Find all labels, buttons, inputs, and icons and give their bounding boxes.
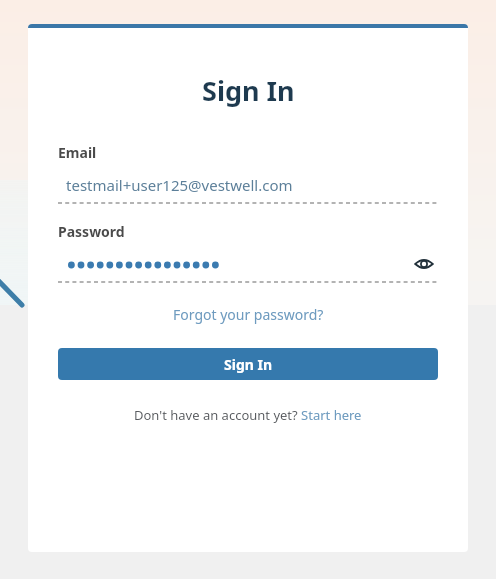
staticText: Don't have an account yet? Start here — [134, 406, 362, 424]
button[interactable]: Don't have an account yet? Start here — [134, 406, 362, 424]
button[interactable]: Show password — [410, 253, 438, 275]
button[interactable]: Forgot your password? — [173, 305, 324, 324]
staticText: Password — [58, 222, 125, 241]
staticText: Sign In — [224, 355, 273, 374]
staticText: Forgot your password? — [173, 305, 324, 324]
button[interactable]: Show password — [58, 253, 438, 275]
staticText: Sign In — [202, 72, 295, 109]
button[interactable]: testmail+user125@vestwell.com — [58, 174, 438, 204]
staticText: Email — [58, 143, 97, 162]
button[interactable]: Sign In — [58, 348, 438, 380]
staticText: testmail+user125@vestwell.com — [66, 175, 293, 195]
